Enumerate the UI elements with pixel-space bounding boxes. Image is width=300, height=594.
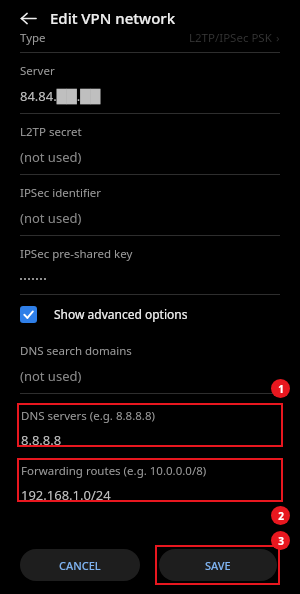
staticText: Server <box>20 63 55 79</box>
staticText: Show advanced options <box>54 306 188 322</box>
button[interactable]: DNS search domains <box>0 333 300 393</box>
staticText: Forwarding routes (e.g. 10.0.0.0/8) <box>21 463 207 479</box>
staticText: CANCEL <box>59 558 101 573</box>
staticText: 1 <box>278 382 284 396</box>
staticText: Type <box>20 30 46 46</box>
staticText: L2TP/IPSec PSK <box>189 30 272 46</box>
staticText: (not used) <box>20 209 82 227</box>
staticText: 8.8.8.8 <box>21 431 62 447</box>
staticText: › <box>276 30 280 46</box>
staticText: L2TP secret <box>20 124 82 140</box>
button[interactable]: DNS servers (e.g. 8.8.8.8) <box>17 403 283 447</box>
button[interactable]: L2TP secret <box>0 114 300 174</box>
button[interactable]: CANCEL <box>20 549 140 581</box>
button[interactable]: Type <box>0 30 300 52</box>
button[interactable]: Show advanced options <box>0 295 300 333</box>
button[interactable]: IPSec identifier <box>0 175 300 235</box>
staticText: DNS search domains <box>20 343 132 359</box>
staticText: SAVE <box>205 558 231 573</box>
staticText: 192.168.1.0/24 <box>21 486 111 502</box>
staticText: IPSec pre-shared key <box>20 246 133 262</box>
staticText: 84.84.██.██ <box>20 87 101 105</box>
staticText: DNS servers (e.g. 8.8.8.8) <box>21 408 155 424</box>
staticText: (not used) <box>20 148 82 166</box>
button[interactable]: IPSec pre-shared key <box>0 236 300 294</box>
staticText: (not used) <box>20 367 82 385</box>
staticText: 2 <box>278 509 284 523</box>
button[interactable]: Server <box>0 53 300 113</box>
staticText: Edit VPN network <box>50 8 176 28</box>
button[interactable]: SAVE <box>159 549 277 581</box>
staticText: IPSec identifier <box>20 185 102 201</box>
button[interactable]: Forwarding routes (e.g. 10.0.0.0/8) <box>17 458 283 502</box>
button[interactable]: Back <box>14 4 42 32</box>
staticText: 3 <box>278 534 284 548</box>
